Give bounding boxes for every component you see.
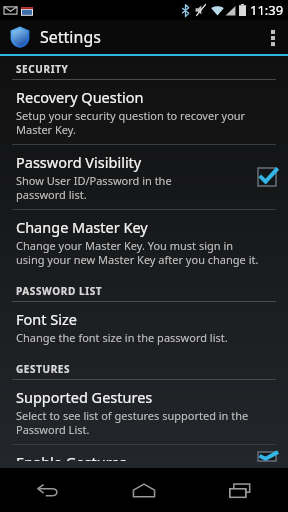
staticText: Recovery Question [16,87,144,107]
staticText: Select to see list of gestures supported… [16,408,249,437]
staticText: SECURITY [16,62,69,76]
staticText: Password Visibility [16,152,142,172]
staticText: Show User ID/Password in the password li… [16,173,172,202]
button[interactable]: Recovery Question [0,80,288,144]
staticText: Enable Gestures [16,452,127,461]
button[interactable]: Password Visibility [0,145,288,209]
button[interactable]: Recent apps [192,468,288,512]
button[interactable]: Toggle option [256,452,278,461]
button[interactable]: Font Size [0,302,288,352]
staticText: Supported Gestures [16,387,153,407]
staticText: 11:39 [250,1,284,19]
staticText: PASSWORD LIST [16,284,103,298]
staticText: Settings [40,26,101,48]
staticText: Font Size [16,309,77,329]
staticText: Setup your security question to recover … [16,108,246,137]
staticText: Change Master Key [16,217,148,237]
button[interactable]: Change Master Key [0,210,288,274]
button[interactable]: Home [96,468,192,512]
staticText: Change the font size in the password lis… [16,330,228,345]
button[interactable]: Toggle option [256,166,278,188]
button[interactable]: Enable Gestures [0,445,288,468]
staticText: GESTURES [16,362,71,376]
button[interactable]: More options [258,20,288,54]
staticText: Change your Master Key. You must sign in… [16,238,259,267]
button[interactable]: Supported Gestures [0,380,288,444]
button[interactable]: Back [0,468,96,512]
